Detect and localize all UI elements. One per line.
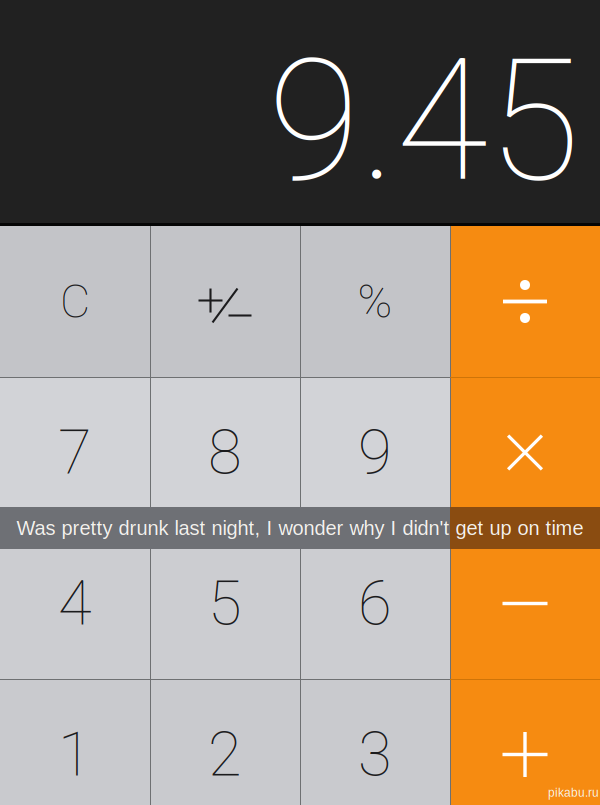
button[interactable]: Seven	[0, 377, 150, 528]
staticText: 4	[58, 568, 92, 639]
button[interactable]: Clear	[0, 226, 150, 377]
button[interactable]: Subtract	[450, 528, 600, 679]
button[interactable]: Nine	[300, 377, 450, 528]
staticText: 6	[358, 568, 392, 639]
staticText: 1	[58, 719, 92, 790]
button[interactable]: Five	[150, 528, 300, 679]
staticText: 2	[208, 719, 242, 790]
button[interactable]: Multiply	[450, 377, 600, 528]
button[interactable]: One	[0, 679, 150, 805]
button[interactable]: Four	[0, 528, 150, 679]
staticText: %	[357, 274, 392, 329]
button[interactable]: Add	[450, 679, 600, 805]
staticText: Was pretty drunk last night, I wonder wh…	[16, 517, 583, 539]
button[interactable]: Two	[150, 679, 300, 805]
staticText: C	[60, 274, 90, 329]
button[interactable]: Percent	[300, 226, 450, 377]
button[interactable]: Plus minus	[150, 226, 300, 377]
staticText: 8	[208, 417, 242, 488]
staticText: 3	[358, 719, 392, 790]
button[interactable]: Three	[300, 679, 450, 805]
staticText: pikabu.ru	[548, 786, 599, 799]
staticText: 9	[358, 417, 392, 488]
staticText: 7	[58, 417, 92, 488]
button[interactable]: Eight	[150, 377, 300, 528]
button[interactable]: Divide	[450, 226, 600, 377]
staticText: 5	[208, 568, 242, 639]
staticText: 9.45	[268, 23, 580, 220]
button[interactable]: Six	[300, 528, 450, 679]
